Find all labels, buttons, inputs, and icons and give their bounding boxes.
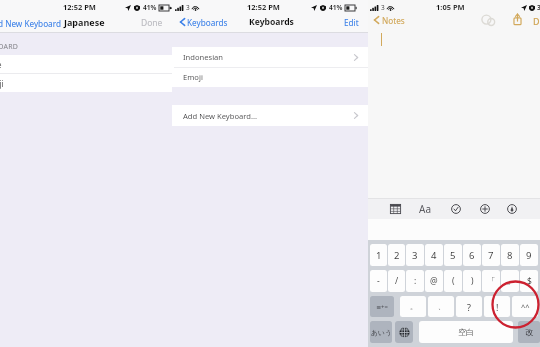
button[interactable]: 6 bbox=[463, 244, 481, 266]
staticText: Done bbox=[141, 17, 163, 29]
button[interactable]: Done bbox=[141, 15, 163, 31]
staticText: Keyboards bbox=[249, 16, 294, 28]
button[interactable]: Table bbox=[390, 204, 401, 214]
button[interactable]: Switch keyboard bbox=[395, 321, 413, 343]
staticText: 3 bbox=[381, 3, 385, 12]
staticText: 1 bbox=[376, 249, 382, 262]
staticText: 4 bbox=[431, 249, 437, 262]
staticText: 9 bbox=[526, 249, 532, 262]
staticText: / bbox=[395, 275, 399, 287]
button[interactable]: 1 bbox=[370, 244, 387, 266]
staticText: 3 bbox=[186, 3, 190, 12]
button[interactable]: 3 bbox=[406, 244, 424, 266]
button[interactable]: : bbox=[406, 270, 424, 292]
staticText: 2 bbox=[394, 249, 400, 262]
button[interactable]: 空白 bbox=[419, 321, 513, 343]
button[interactable]: あいう bbox=[370, 321, 392, 343]
staticText: ? bbox=[467, 301, 471, 313]
button[interactable]: 「 bbox=[482, 270, 500, 292]
staticText: ! bbox=[496, 301, 499, 313]
button[interactable]: Collaborate bbox=[481, 13, 496, 28]
staticText: 41% bbox=[329, 3, 343, 12]
staticText: Add New Keyboard... bbox=[183, 111, 257, 121]
staticText: 3 bbox=[412, 249, 418, 262]
button[interactable]: ) bbox=[463, 270, 481, 292]
staticText: d New Keyboard bbox=[0, 18, 61, 29]
button[interactable]: Checklist bbox=[451, 204, 461, 214]
button[interactable]: Add New Keyboard... bbox=[172, 105, 368, 126]
button[interactable]: 2 bbox=[388, 244, 405, 266]
staticText: 空白 bbox=[458, 327, 474, 337]
button[interactable]: - bbox=[370, 270, 387, 292]
staticText: Edit bbox=[344, 17, 359, 28]
staticText: ) bbox=[471, 275, 474, 287]
staticText: : bbox=[414, 275, 417, 287]
staticText: e bbox=[0, 59, 2, 70]
staticText: Emoji bbox=[183, 72, 203, 82]
button[interactable]: d New Keyboard bbox=[0, 15, 61, 31]
button[interactable]: Add attachment bbox=[480, 204, 490, 214]
button[interactable]: ! bbox=[484, 296, 510, 317]
staticText: あいう bbox=[371, 328, 392, 337]
button[interactable]: $ bbox=[520, 270, 538, 292]
button[interactable]: Markup bbox=[507, 204, 517, 214]
button[interactable]: 、 bbox=[428, 296, 454, 317]
staticText: OARD bbox=[0, 42, 19, 52]
button[interactable]: Indonesian bbox=[172, 47, 368, 67]
staticText: 41% bbox=[143, 3, 157, 12]
staticText: ( bbox=[452, 275, 455, 287]
button[interactable]: 」 bbox=[501, 270, 519, 292]
button[interactable]: 9 bbox=[520, 244, 538, 266]
staticText: Aa bbox=[419, 202, 431, 216]
button[interactable]: / bbox=[388, 270, 405, 292]
button[interactable]: Emoji bbox=[172, 67, 368, 87]
staticText: 改 bbox=[525, 327, 533, 337]
button[interactable]: 5 bbox=[444, 244, 462, 266]
staticText: Notes bbox=[382, 15, 405, 26]
button[interactable]: 改 bbox=[518, 321, 540, 343]
staticText: 5 bbox=[450, 249, 456, 262]
staticText: 8 bbox=[507, 249, 513, 262]
button[interactable]: Keyboards bbox=[172, 13, 232, 31]
staticText: - bbox=[377, 275, 380, 287]
staticText: 3 bbox=[537, 3, 540, 12]
button[interactable]: @ bbox=[425, 270, 443, 292]
button[interactable]: Edit bbox=[342, 13, 361, 31]
staticText: aji bbox=[0, 78, 4, 89]
staticText: 「 bbox=[487, 276, 496, 287]
button[interactable]: 8 bbox=[501, 244, 519, 266]
staticText: 1:05 PM bbox=[436, 2, 465, 12]
button[interactable]: 。 bbox=[400, 296, 426, 317]
button[interactable]: Share bbox=[512, 13, 523, 26]
staticText: 。 bbox=[410, 302, 417, 311]
button[interactable]: 4 bbox=[425, 244, 443, 266]
staticText: @ bbox=[430, 275, 438, 287]
button[interactable]: ^^ bbox=[512, 296, 538, 317]
staticText: $ bbox=[527, 275, 532, 287]
staticText: ≡+= bbox=[376, 303, 388, 311]
button[interactable]: D bbox=[533, 15, 540, 27]
staticText: ^^ bbox=[521, 302, 530, 312]
staticText: Keyboards bbox=[187, 17, 228, 28]
button[interactable]: 7 bbox=[482, 244, 500, 266]
button[interactable]: ( bbox=[444, 270, 462, 292]
staticText: Indonesian bbox=[183, 52, 224, 62]
staticText: 」 bbox=[506, 276, 515, 287]
button[interactable]: Notes bbox=[368, 12, 409, 28]
button[interactable]: ? bbox=[456, 296, 482, 317]
staticText: Japanese bbox=[64, 16, 105, 28]
staticText: 、 bbox=[438, 302, 445, 311]
staticText: 12:52 PM bbox=[63, 2, 96, 12]
button[interactable]: Aa bbox=[419, 202, 431, 216]
staticText: 7 bbox=[488, 249, 494, 262]
staticText: 6 bbox=[469, 249, 475, 262]
button[interactable]: ≡+= bbox=[370, 296, 394, 317]
staticText: 12:52 PM bbox=[247, 2, 280, 12]
